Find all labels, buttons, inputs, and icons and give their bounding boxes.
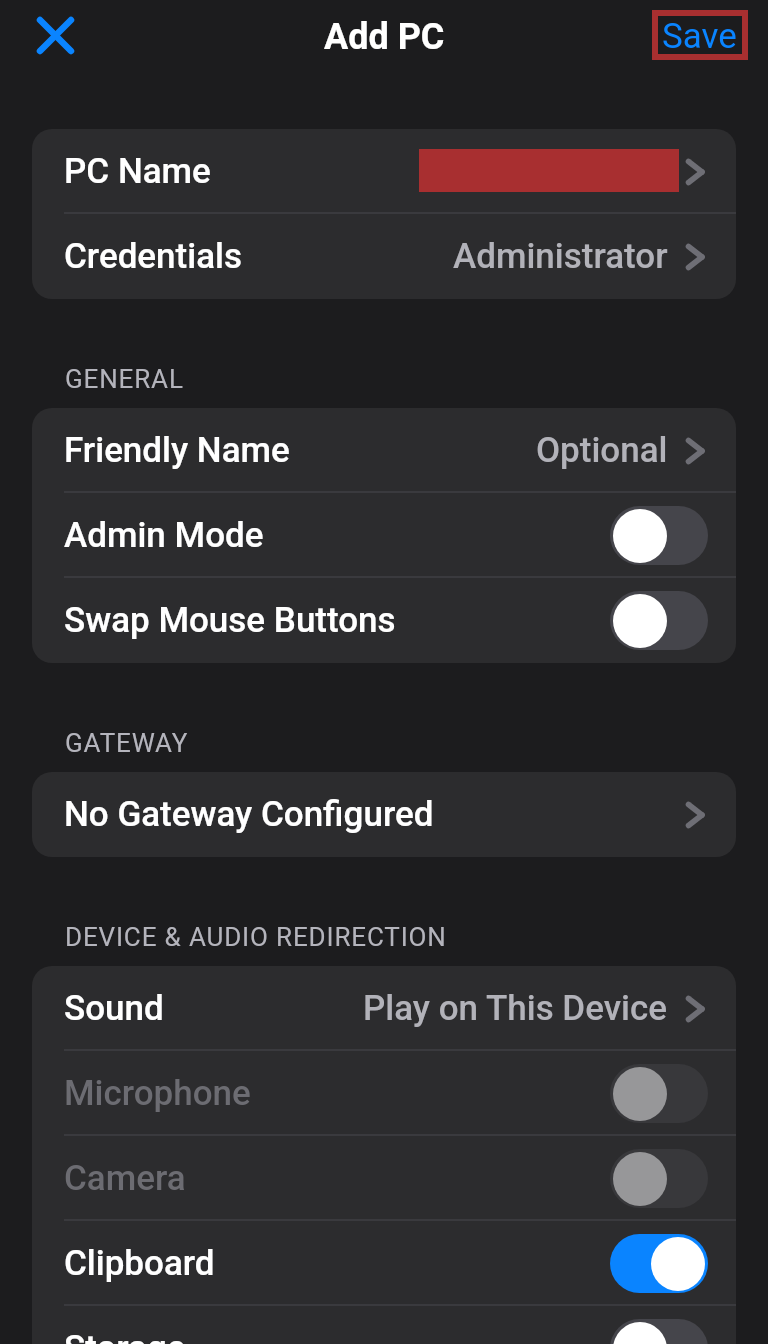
button[interactable]: Save: [662, 16, 737, 57]
staticText: Camera: [64, 1158, 186, 1199]
staticText: Clipboard: [64, 1243, 215, 1284]
staticText: Administrator: [453, 236, 668, 277]
staticText: Friendly Name: [64, 430, 290, 471]
button[interactable]: Friendly Name: [32, 408, 736, 493]
button[interactable]: Microphone: [32, 1051, 736, 1136]
button[interactable]: Admin Mode: [32, 493, 736, 578]
staticText: PC Name: [64, 151, 211, 192]
staticText: Microphone: [64, 1073, 251, 1114]
staticText: GENERAL: [65, 364, 184, 394]
button[interactable]: Off: [610, 1319, 708, 1344]
button[interactable]: Close: [22, 2, 88, 68]
staticText: Credentials: [64, 236, 242, 277]
staticText: Storage: [64, 1328, 186, 1344]
button[interactable]: Off: [610, 1064, 708, 1123]
staticText: No Gateway Configured: [64, 794, 434, 835]
staticText: DEVICE & AUDIO REDIRECTION: [65, 922, 447, 952]
button[interactable]: PC Name: [32, 129, 736, 214]
button[interactable]: No Gateway Configured: [32, 772, 736, 857]
staticText: Swap Mouse Buttons: [64, 600, 396, 641]
button[interactable]: Off: [610, 591, 708, 650]
staticText: Admin Mode: [64, 515, 264, 556]
button[interactable]: Sound: [32, 966, 736, 1051]
button[interactable]: Credentials: [32, 214, 736, 299]
button[interactable]: Off: [610, 506, 708, 565]
button[interactable]: On: [610, 1234, 708, 1293]
button[interactable]: Camera: [32, 1136, 736, 1221]
staticText: Sound: [64, 988, 164, 1029]
staticText: Optional: [536, 430, 668, 471]
button[interactable]: Off: [610, 1149, 708, 1208]
button[interactable]: Swap Mouse Buttons: [32, 578, 736, 663]
button[interactable]: Clipboard: [32, 1221, 736, 1306]
staticText: Play on This Device: [363, 988, 668, 1029]
staticText: GATEWAY: [65, 728, 189, 758]
staticText: Add PC: [324, 16, 445, 58]
staticText: Save: [662, 16, 737, 57]
button[interactable]: Storage: [32, 1306, 736, 1344]
